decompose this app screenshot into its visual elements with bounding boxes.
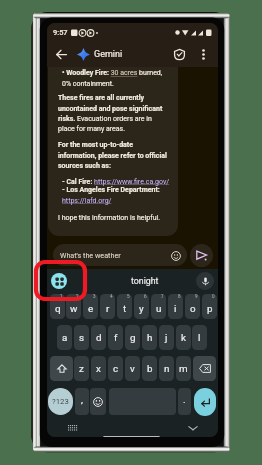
staticText: . [183, 394, 186, 405]
staticText: p [207, 303, 213, 314]
staticText: 7 [161, 294, 164, 299]
button[interactable]: ?123 [48, 388, 73, 415]
staticText: , [81, 394, 83, 405]
staticText: h [147, 332, 153, 343]
button[interactable]: Enter [194, 388, 216, 416]
staticText: l [198, 332, 201, 343]
button[interactable]: k [176, 325, 191, 350]
button[interactable]: 9 [185, 294, 200, 319]
staticText: 9 [195, 294, 198, 299]
staticText: These fires are all currently uncontaine… [58, 94, 170, 133]
staticText: t [123, 303, 127, 314]
button[interactable]: z [74, 356, 89, 381]
button[interactable]: g [125, 325, 140, 350]
button[interactable]: Switch input method [51, 273, 67, 289]
button[interactable]: c [108, 356, 123, 381]
staticText: 8 [178, 294, 181, 299]
button[interactable]: 8 [168, 294, 183, 319]
staticText: w [70, 303, 78, 314]
button[interactable]: Send message [190, 244, 213, 267]
button[interactable]: a [57, 325, 72, 350]
button[interactable]: 0 [202, 294, 217, 319]
staticText: o [190, 303, 196, 314]
staticText: r [106, 303, 110, 314]
button[interactable]: 6 [134, 294, 149, 319]
button[interactable]: More options [194, 45, 213, 64]
staticText: 5 [127, 294, 130, 299]
button[interactable]: 7 [151, 294, 166, 319]
staticText: s [79, 332, 85, 343]
button[interactable]: Collapse keyboard [186, 421, 200, 435]
button[interactable]: j [159, 325, 174, 350]
staticText: 4 [110, 294, 113, 299]
staticText: - Cal Fire: https://www.fire.ca.gov/ [62, 178, 170, 186]
staticText: e [88, 303, 94, 314]
button[interactable]: tonight [72, 269, 218, 292]
staticText: n [164, 363, 170, 374]
staticText: 3 [93, 294, 96, 299]
staticText: d [96, 332, 102, 343]
button[interactable]: Back [52, 45, 71, 64]
staticText: I hope this information is helpful. [58, 214, 161, 222]
staticText: 9:57 [53, 28, 68, 37]
button[interactable]: s [74, 325, 89, 350]
button[interactable]: n [159, 356, 174, 381]
staticText: a [62, 332, 68, 343]
staticText: j [165, 332, 168, 343]
staticText: f [114, 332, 118, 343]
staticText: 6 [144, 294, 147, 299]
button[interactable]: Emoji [90, 388, 106, 415]
staticText: For the most up-to-date information, ple… [58, 141, 170, 170]
staticText: k [181, 332, 186, 343]
button[interactable]: m [176, 356, 191, 381]
button[interactable]: 2 [66, 294, 81, 319]
staticText: 1 [60, 294, 63, 299]
staticText: z [79, 363, 84, 374]
staticText: ?123 [52, 397, 69, 406]
staticText: Gemini [94, 49, 123, 60]
staticText: - Los Angeles Fire Department: https://l… [62, 186, 170, 205]
button[interactable]: Period [178, 388, 191, 415]
button[interactable]: Voice input [196, 272, 214, 290]
staticText: 0 [212, 294, 215, 299]
button[interactable]: x [91, 356, 106, 381]
staticText: • Woodley Fire: 30 acres burned, 0% cont… [62, 69, 170, 88]
button[interactable]: Shift [50, 356, 73, 381]
button[interactable]: 5 [117, 294, 132, 319]
staticText: q [55, 303, 61, 314]
button[interactable]: Backspace [193, 356, 216, 381]
staticText: tonight [131, 276, 159, 286]
button[interactable]: f [108, 325, 123, 350]
staticText: m [179, 363, 188, 374]
button[interactable]: l [192, 325, 207, 350]
staticText: i [174, 303, 177, 314]
button[interactable]: Comma [75, 388, 89, 415]
button[interactable]: 1 [50, 294, 65, 319]
button[interactable]: Hide keyboard [65, 421, 79, 435]
button[interactable]: v [125, 356, 140, 381]
staticText: u [156, 303, 162, 314]
staticText: v [130, 363, 135, 374]
staticText: What's the weather [60, 251, 121, 259]
button[interactable]: Privacy shield [170, 45, 189, 64]
button[interactable]: h [142, 325, 157, 350]
staticText: c [113, 363, 119, 374]
staticText: y [139, 303, 144, 314]
staticText: g [130, 332, 136, 343]
button[interactable]: b [142, 356, 157, 381]
button[interactable]: 3 [83, 294, 98, 319]
button[interactable]: d [91, 325, 106, 350]
staticText: x [96, 363, 101, 374]
staticText: b [147, 363, 153, 374]
button[interactable]: What's the weather [53, 244, 187, 266]
button[interactable]: 4 [100, 294, 115, 319]
staticText: 2 [76, 294, 79, 299]
